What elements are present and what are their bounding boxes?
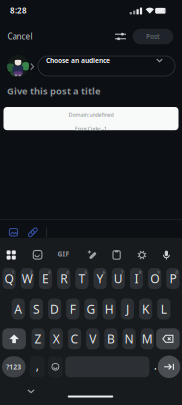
button[interactable]: O [148,268,161,289]
button[interactable]: Symbols [2,356,26,377]
button[interactable]: Add link [28,228,37,237]
button[interactable]: R [57,268,70,289]
staticText: 4 [66,270,68,275]
staticText: V [89,331,96,347]
button[interactable]: P [166,268,179,289]
button[interactable]: C [68,328,81,349]
button[interactable]: , [30,356,44,377]
staticText: S [33,301,40,317]
staticText: GIF [58,249,70,258]
staticText: F [70,301,76,317]
staticText: Q [5,270,14,286]
button[interactable]: S [30,298,43,319]
button[interactable]: V [86,328,99,349]
button[interactable]: Add image [8,228,18,237]
button[interactable]: Clipboard [113,250,121,260]
staticText: 1 [12,270,14,275]
staticText: Post [146,32,160,41]
staticText: L [161,301,167,317]
button[interactable]: T [75,268,88,289]
button[interactable]: E [39,268,52,289]
button[interactable]: Z [31,328,45,349]
staticText: E [42,270,49,286]
button[interactable]: Q [2,268,16,289]
button[interactable]: Post [133,29,173,44]
button[interactable]: Enter [158,356,180,378]
button[interactable]: D [48,298,61,319]
staticText: Domain: undefined [68,111,113,118]
staticText: Choose an audience [46,56,110,65]
button[interactable]: Open features menu [6,250,16,260]
staticText: W [22,270,33,286]
button[interactable]: K [139,298,152,319]
staticText: . [154,357,157,373]
button[interactable]: Shift [2,328,26,349]
staticText: 7 [121,270,123,275]
button[interactable]: I [130,268,143,289]
button[interactable]: N [122,328,136,349]
button[interactable]: Hide keyboard [27,389,34,393]
staticText: Give this post a title [7,85,101,97]
staticText: U [114,270,123,286]
staticText: Y [97,270,104,286]
button[interactable]: Cancel [7,31,32,42]
staticText: B [107,331,115,347]
staticText: D [50,301,59,317]
staticText: P [169,270,176,286]
staticText: , [36,357,39,373]
staticText: C [70,331,78,347]
button[interactable]: Proofread [87,250,97,260]
button[interactable]: Period [150,356,160,377]
button[interactable]: H [103,298,116,319]
button[interactable]: X [50,328,63,349]
staticText: 2 [30,270,32,275]
staticText: I [134,270,138,286]
button[interactable]: W [21,268,34,289]
button[interactable]: Backspace [156,328,180,349]
staticText: Cancel [7,31,32,42]
staticText: H [105,301,114,317]
staticText: 8 [139,270,141,275]
staticText: K [142,301,149,317]
button[interactable]: Switch profile [4,55,33,77]
staticText: 8:28 [10,5,27,16]
staticText: X [53,331,60,347]
staticText: 5 [84,270,86,275]
staticText: R [60,270,67,286]
button[interactable]: G [84,298,98,319]
staticText: 3 [48,270,50,275]
button[interactable]: J [121,298,134,319]
button[interactable]: B [104,328,117,349]
button[interactable]: Post settings [115,32,126,41]
button[interactable]: Emoji [48,356,63,377]
staticText: T [78,270,85,286]
button[interactable]: Y [93,268,107,289]
staticText: M [142,331,153,347]
staticText: J [126,301,129,317]
staticText: ?123 [6,362,21,371]
button[interactable]: F [66,298,79,319]
staticText: O [150,270,159,286]
staticText: Z [35,331,42,347]
staticText: 0 [175,270,177,275]
button[interactable]: Settings [137,250,147,260]
button[interactable]: M [141,328,154,349]
button[interactable]: Stickers [33,250,42,260]
button[interactable]: U [112,268,125,289]
staticText: 9 [157,270,159,275]
button[interactable]: L [157,298,170,319]
staticText: A [14,301,22,317]
button[interactable]: Voice typing [162,250,170,260]
staticText: G [86,301,95,317]
button[interactable]: A [12,298,25,319]
button[interactable]: Choose an audience [38,56,175,76]
staticText: N [125,331,134,347]
staticText: Error Code: -1 [75,125,107,132]
button[interactable]: GIFs [58,249,70,258]
staticText: 6 [103,270,105,275]
